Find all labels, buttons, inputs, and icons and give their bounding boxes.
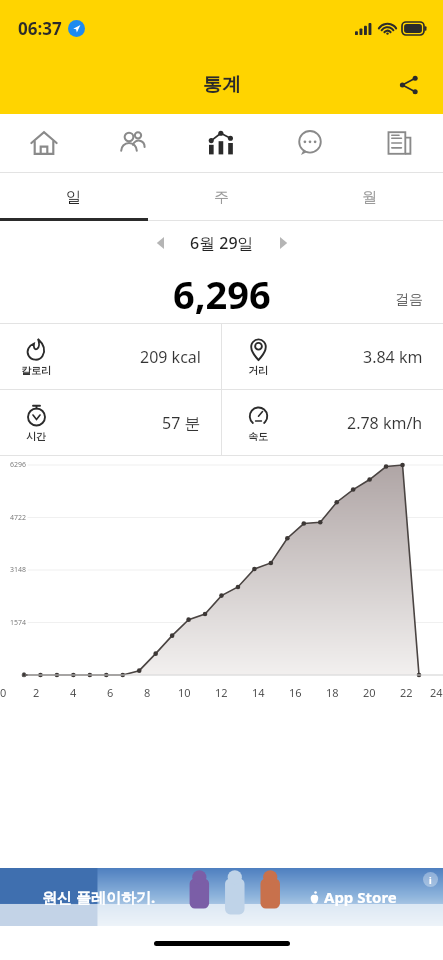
staticText: 칼로리 xyxy=(21,364,51,377)
staticText: 원신 플레이하기. xyxy=(42,887,156,907)
button[interactable]: Statistics xyxy=(176,114,265,172)
button[interactable]: News xyxy=(354,114,443,172)
staticText: 06:37 xyxy=(18,17,62,40)
staticText: 16 xyxy=(289,685,302,700)
button[interactable]: Home xyxy=(0,114,88,172)
staticText: 4 xyxy=(70,685,77,700)
staticText: 월 xyxy=(362,188,377,207)
button[interactable]: 칼로리 xyxy=(0,324,221,389)
staticText: 3148 xyxy=(2,565,26,575)
staticText: 주 xyxy=(214,188,229,207)
button[interactable]: 속도 xyxy=(222,390,443,455)
button[interactable]: 시간 xyxy=(0,390,221,455)
button[interactable]: Previous day xyxy=(144,226,178,260)
staticText: 12 xyxy=(215,685,228,700)
staticText: App Store xyxy=(324,887,397,907)
staticText: 통계 xyxy=(203,73,241,97)
staticText: 8 xyxy=(144,685,151,700)
staticText: 2.78 km/h xyxy=(347,412,423,434)
staticText: 24 xyxy=(430,685,443,700)
staticText: 0 xyxy=(0,685,7,700)
staticText: 2 xyxy=(33,685,40,700)
button[interactable]: 거리 xyxy=(222,324,443,389)
button[interactable]: Advertisement xyxy=(0,868,443,926)
button[interactable]: Friends xyxy=(88,114,176,172)
staticText: 1574 xyxy=(2,618,26,628)
staticText: 시간 xyxy=(26,430,46,443)
staticText: 0 xyxy=(2,670,26,680)
staticText: 22 xyxy=(400,685,413,700)
button[interactable]: Chat xyxy=(265,114,354,172)
button[interactable]: Next day xyxy=(266,226,300,260)
staticText: 6,296 xyxy=(173,268,271,320)
staticText: 6월 29일 xyxy=(190,232,254,254)
staticText: i xyxy=(429,874,432,886)
staticText: 일 xyxy=(66,188,81,207)
staticText: 14 xyxy=(252,685,265,700)
staticText: 57 분 xyxy=(162,412,201,434)
staticText: 속도 xyxy=(248,430,268,443)
staticText: 6 xyxy=(107,685,114,700)
staticText: 3.84 km xyxy=(363,346,423,368)
staticText: 10 xyxy=(178,685,191,700)
staticText: 209 kcal xyxy=(140,346,201,368)
staticText: 걸음 xyxy=(395,291,423,309)
button[interactable]: Ad info xyxy=(423,872,438,887)
staticText: 거리 xyxy=(248,364,268,377)
button[interactable]: 일 xyxy=(0,173,147,221)
staticText: 4722 xyxy=(2,513,26,523)
staticText: 18 xyxy=(326,685,339,700)
button[interactable]: 월 xyxy=(295,173,443,221)
staticText: 20 xyxy=(363,685,376,700)
button[interactable]: Share xyxy=(385,61,433,109)
button[interactable]: 주 xyxy=(147,173,295,221)
staticText: 6296 xyxy=(2,460,26,470)
